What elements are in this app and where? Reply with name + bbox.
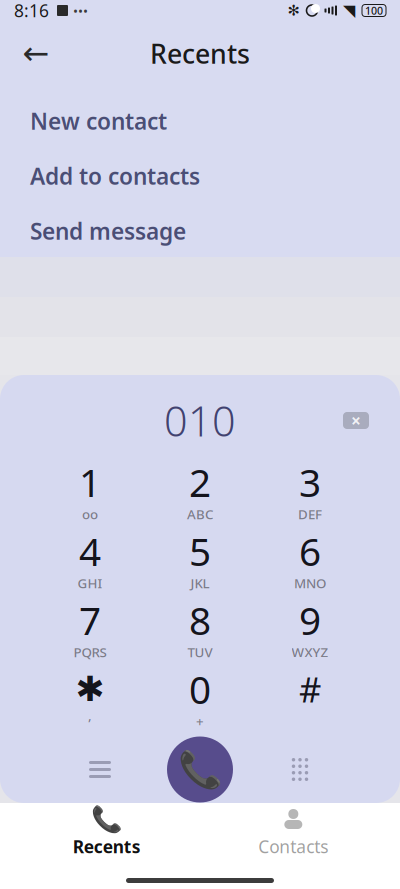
- button[interactable]: Add to contacts: [0, 148, 400, 203]
- staticText: 9: [299, 594, 321, 646]
- staticText: TUV: [187, 643, 212, 661]
- staticText: 100: [365, 3, 383, 18]
- staticText: 0: [189, 663, 211, 715]
- staticText: +: [196, 712, 204, 730]
- button[interactable]: Backspace: [330, 398, 382, 442]
- button[interactable]: Call log options: [50, 734, 150, 804]
- staticText: 7: [79, 594, 101, 646]
- button[interactable]: Send message: [0, 203, 400, 258]
- button[interactable]: 9: [255, 593, 365, 659]
- staticText: 3: [299, 456, 321, 508]
- button[interactable]: Call: [150, 734, 250, 804]
- button[interactable]: 4: [35, 524, 145, 590]
- staticText: PQRS: [73, 643, 106, 661]
- staticText: Contacts: [258, 835, 328, 858]
- staticText: Recents: [150, 36, 250, 71]
- staticText: DEF: [298, 505, 322, 523]
- staticText: Recents: [73, 835, 141, 858]
- staticText: ✱: [75, 669, 104, 709]
- button[interactable]: 6: [255, 524, 365, 590]
- button[interactable]: Keypad: [250, 734, 350, 804]
- staticText: 📞: [177, 749, 222, 790]
- button[interactable]: New contact: [0, 93, 400, 148]
- staticText: #: [299, 666, 321, 712]
- staticText: ABC: [187, 505, 213, 523]
- staticText: GHI: [77, 574, 102, 592]
- staticText: oo: [82, 505, 98, 523]
- staticText: 6: [299, 525, 321, 577]
- staticText: •••: [73, 2, 88, 19]
- staticText: WXYZ: [291, 643, 328, 661]
- staticText: 010: [164, 393, 236, 448]
- staticText: MNO: [294, 574, 326, 592]
- staticText: Add to contacts: [30, 161, 200, 191]
- staticText: Send message: [30, 216, 186, 246]
- button[interactable]: Contacts: [213, 805, 373, 861]
- staticText: New contact: [30, 106, 167, 136]
- button[interactable]: 8: [145, 593, 255, 659]
- button[interactable]: 📞: [27, 805, 187, 861]
- button[interactable]: #: [255, 662, 365, 728]
- staticText: ←: [22, 35, 49, 72]
- staticText: ◥: [343, 1, 355, 20]
- staticText: 1: [79, 456, 101, 508]
- button[interactable]: 2: [145, 455, 255, 521]
- staticText: ✻: [287, 2, 299, 19]
- button[interactable]: 7: [35, 593, 145, 659]
- staticText: 8:16: [14, 0, 49, 22]
- staticText: ×: [351, 409, 361, 432]
- button[interactable]: 5: [145, 524, 255, 590]
- staticText: JKL: [190, 574, 209, 592]
- button[interactable]: ✱: [35, 662, 145, 728]
- staticText: 4: [79, 525, 101, 577]
- button[interactable]: 3: [255, 455, 365, 521]
- button[interactable]: 1: [35, 455, 145, 521]
- staticText: 📞: [91, 804, 123, 833]
- staticText: 8: [189, 594, 211, 646]
- staticText: 5: [189, 525, 211, 577]
- staticText: 2: [189, 456, 211, 508]
- staticText: ,: [88, 706, 92, 724]
- button[interactable]: Back: [12, 29, 60, 77]
- button[interactable]: 0: [145, 662, 255, 728]
